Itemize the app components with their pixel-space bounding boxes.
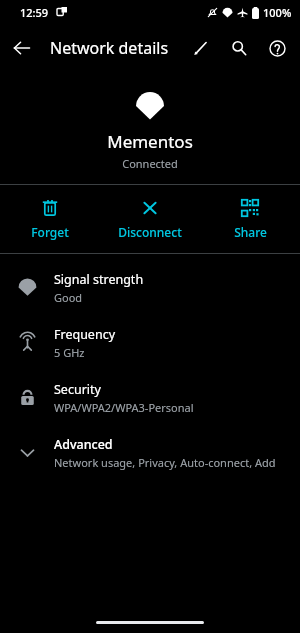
button[interactable]: Frequency [0,315,300,370]
staticText: Disconnect [118,224,182,240]
button[interactable]: Share [200,190,300,248]
staticText: Share [234,224,267,240]
button[interactable]: Security [0,370,300,425]
staticText: 12:59 [20,5,49,20]
button[interactable]: Help [258,27,296,69]
button[interactable]: Advanced [0,425,300,480]
staticText: Signal strength [54,271,144,288]
staticText: WPA/WPA2/WPA3-Personal [54,400,194,415]
button[interactable]: Forget [0,190,100,248]
staticText: Advanced [54,436,113,453]
staticText: Forget [31,224,69,240]
button[interactable]: Search [220,29,258,67]
staticText: Good [54,290,83,305]
staticText: 100% [263,5,292,20]
button[interactable]: Edit [182,29,220,67]
button[interactable]: Back [0,26,44,70]
button[interactable]: Signal strength [0,260,300,315]
staticText: Network usage, Privacy, Auto-connect, Ad… [54,455,300,470]
button[interactable]: Disconnect [100,190,200,248]
staticText: 5 GHz [54,345,85,360]
staticText: Network details [50,37,182,59]
staticText: Frequency [54,326,116,343]
staticText: Mementos [0,130,300,153]
staticText: Security [54,381,101,398]
staticText: Connected [0,156,300,171]
